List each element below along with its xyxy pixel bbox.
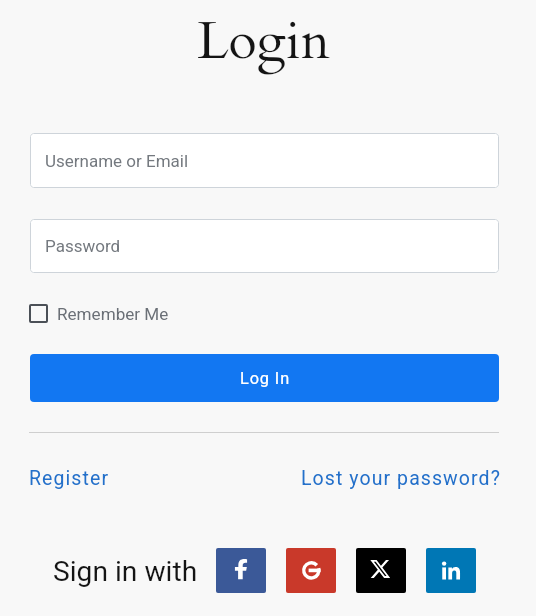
button[interactable]: Register (29, 464, 159, 492)
staticText: Username or Email (45, 151, 189, 171)
button[interactable]: Remember Me (29, 300, 229, 326)
staticText: Log In (240, 369, 291, 388)
button[interactable]: Sign in with LinkedIn (426, 548, 476, 593)
staticText: Remember Me (57, 304, 169, 324)
button[interactable]: Username or Email (30, 133, 499, 188)
staticText: Register (29, 467, 110, 490)
button[interactable]: Password (30, 219, 499, 273)
button[interactable]: Sign in with Facebook (216, 548, 266, 593)
button[interactable]: Lost your password? (291, 464, 501, 492)
staticText: Login (197, 7, 330, 77)
staticText: Sign in with (53, 555, 198, 588)
button[interactable]: Sign in with Google (286, 548, 336, 593)
staticText: Lost your password? (301, 467, 501, 490)
staticText: Password (45, 236, 121, 256)
button[interactable]: Sign in with X (356, 548, 406, 593)
button[interactable]: Log In (30, 354, 499, 402)
